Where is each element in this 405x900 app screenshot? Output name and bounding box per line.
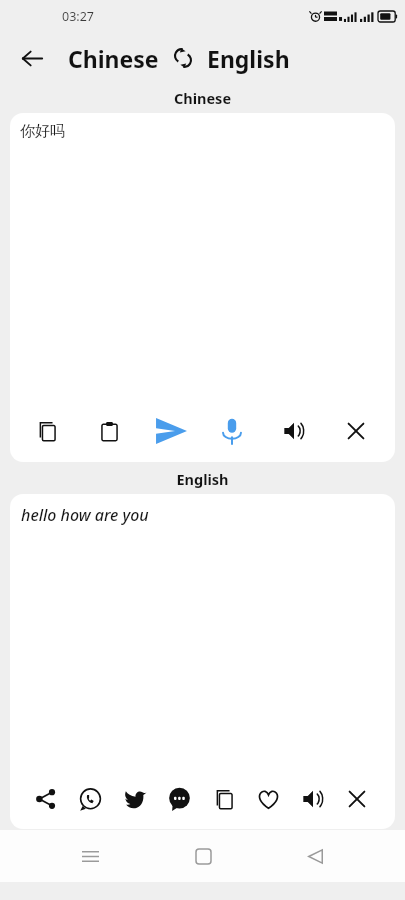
button[interactable]: Recent apps xyxy=(67,833,113,879)
staticText: 你好吗 xyxy=(20,122,65,141)
staticText: 03:27 xyxy=(62,8,94,25)
staticText: English xyxy=(0,469,405,489)
button[interactable]: Copy xyxy=(28,412,66,450)
staticText: English xyxy=(207,43,290,74)
button[interactable]: Back xyxy=(292,833,338,879)
button[interactable]: Listen xyxy=(294,780,332,818)
button[interactable]: Translate xyxy=(152,412,190,450)
button[interactable]: Clear xyxy=(337,412,375,450)
button[interactable]: Home xyxy=(180,833,226,879)
button[interactable]: Speak xyxy=(213,412,251,450)
button[interactable]: Favorite xyxy=(249,780,287,818)
staticText: hello how are you xyxy=(21,504,149,526)
staticText: Chinese xyxy=(68,43,159,74)
button[interactable]: Close xyxy=(338,780,376,818)
button[interactable]: Swap languages xyxy=(168,43,198,73)
button[interactable]: WhatsApp xyxy=(71,780,109,818)
button[interactable]: Share xyxy=(27,780,65,818)
button[interactable]: Paste xyxy=(90,412,128,450)
button[interactable]: Copy xyxy=(205,780,243,818)
button[interactable]: SMS xyxy=(160,780,198,818)
button[interactable]: Back xyxy=(10,36,54,80)
button[interactable]: Twitter xyxy=(116,780,154,818)
button[interactable]: Listen xyxy=(275,412,313,450)
staticText: Chinese xyxy=(0,88,405,108)
